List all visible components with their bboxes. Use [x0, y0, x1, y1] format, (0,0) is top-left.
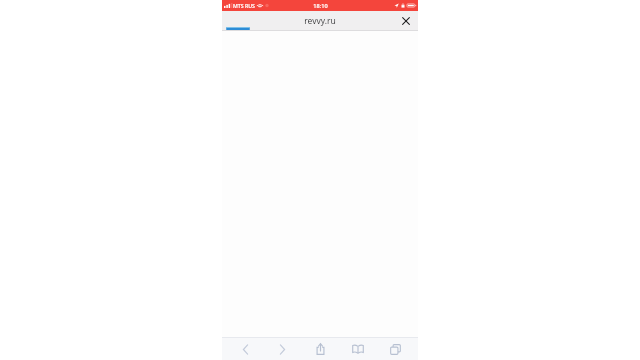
button[interactable]: Back: [230, 338, 260, 360]
staticText: 18:10: [313, 2, 328, 10]
button[interactable]: Forward: [267, 338, 297, 360]
button[interactable]: Share: [305, 338, 335, 360]
staticText: MTS RUS: [233, 2, 255, 9]
button[interactable]: Bookmarks: [343, 338, 373, 360]
button[interactable]: Close: [399, 14, 413, 28]
staticText: revvy.ru: [304, 15, 336, 27]
button[interactable]: Tabs: [380, 338, 410, 360]
